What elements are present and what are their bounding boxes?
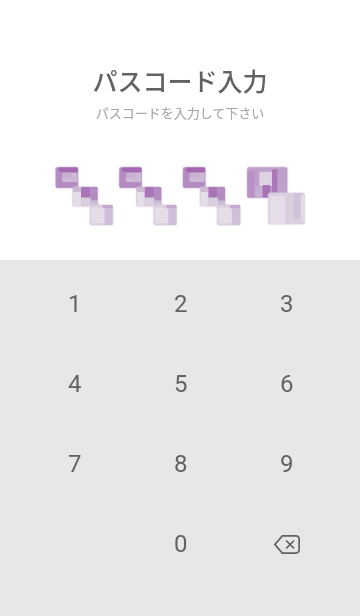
button[interactable]: 3 — [234, 264, 340, 344]
button[interactable]: 0 — [128, 504, 234, 584]
staticText: パスコード入力 — [0, 62, 360, 98]
button[interactable]: 8 — [128, 424, 234, 504]
staticText: 9 — [280, 450, 294, 478]
staticText: 8 — [174, 450, 188, 478]
button[interactable]: 1 — [22, 264, 128, 344]
staticText: パスコードを入力して下さい — [0, 103, 360, 122]
staticText: 2 — [174, 290, 188, 318]
staticText: 1 — [68, 290, 82, 318]
staticText: 7 — [68, 450, 82, 478]
other: Backspace — [274, 535, 300, 554]
button[interactable]: 5 — [128, 344, 234, 424]
button[interactable]: 6 — [234, 344, 340, 424]
staticText: 3 — [280, 290, 294, 318]
staticText: 6 — [280, 370, 294, 398]
button[interactable]: 7 — [22, 424, 128, 504]
button[interactable]: 2 — [128, 264, 234, 344]
button[interactable]: 9 — [234, 424, 340, 504]
staticText: 5 — [174, 370, 188, 398]
staticText: 0 — [174, 530, 188, 558]
button[interactable]: Backspace — [234, 504, 340, 584]
staticText: 4 — [68, 370, 82, 398]
button[interactable]: 4 — [22, 344, 128, 424]
